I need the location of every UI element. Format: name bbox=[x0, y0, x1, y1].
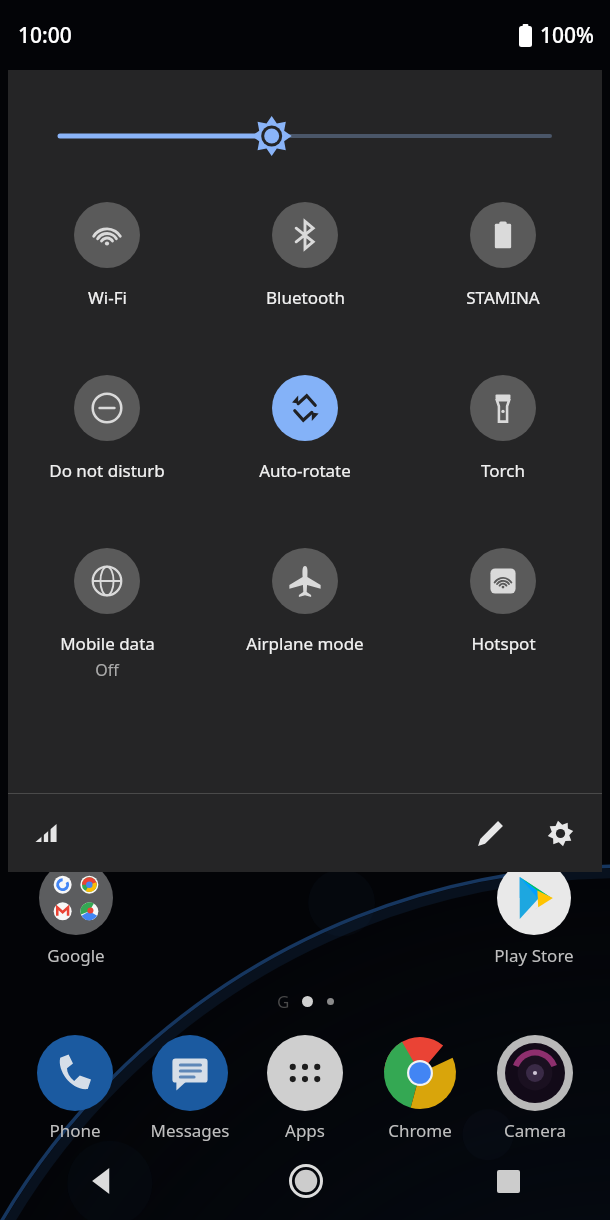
staticText: G bbox=[277, 990, 290, 1013]
button[interactable]: STAMINA bbox=[404, 202, 602, 309]
button[interactable]: Back bbox=[0, 1142, 204, 1220]
button[interactable]: Wi-Fi bbox=[8, 202, 206, 309]
staticText: 10:00 bbox=[18, 21, 72, 50]
button[interactable] bbox=[60, 116, 550, 156]
staticText: Messages bbox=[150, 1119, 230, 1142]
button[interactable]: Camera bbox=[483, 1035, 587, 1142]
staticText: Google bbox=[47, 944, 105, 967]
button[interactable]: Torch bbox=[404, 375, 602, 482]
button[interactable]: Settings bbox=[534, 807, 586, 859]
staticText: Off bbox=[95, 659, 119, 681]
staticText: Mobile data bbox=[60, 632, 155, 655]
button[interactable]: Chrome bbox=[368, 1035, 472, 1142]
staticText: STAMINA bbox=[466, 286, 540, 309]
staticText: Auto-rotate bbox=[259, 459, 351, 482]
staticText: Play Store bbox=[494, 944, 574, 967]
button[interactable]: Signal strength bbox=[22, 809, 70, 857]
button[interactable]: Do not disturb bbox=[8, 375, 206, 482]
staticText: Do not disturb bbox=[49, 459, 165, 482]
button[interactable]: Recents bbox=[407, 1142, 610, 1220]
button[interactable]: Airplane mode bbox=[206, 548, 404, 655]
button[interactable]: Mobile data bbox=[8, 548, 206, 681]
button[interactable]: Edit tiles bbox=[464, 807, 516, 859]
staticText: Airplane mode bbox=[246, 632, 364, 655]
button[interactable]: Google bbox=[24, 860, 128, 967]
staticText: Apps bbox=[285, 1119, 325, 1142]
button[interactable]: Play Store bbox=[482, 860, 586, 967]
button[interactable]: Bluetooth bbox=[206, 202, 404, 309]
staticText: Wi-Fi bbox=[88, 286, 127, 309]
staticText: Camera bbox=[504, 1119, 566, 1142]
staticText: 100% bbox=[540, 21, 594, 50]
button[interactable]: Apps bbox=[253, 1035, 357, 1142]
button[interactable]: Hotspot bbox=[404, 548, 602, 655]
button[interactable]: Home bbox=[204, 1142, 407, 1220]
button[interactable]: Auto-rotate bbox=[206, 375, 404, 482]
button[interactable]: Messages bbox=[138, 1035, 242, 1142]
button[interactable]: Phone bbox=[23, 1035, 127, 1142]
staticText: Phone bbox=[49, 1119, 101, 1142]
staticText: Torch bbox=[481, 459, 525, 482]
staticText: Chrome bbox=[388, 1119, 452, 1142]
staticText: Bluetooth bbox=[266, 286, 345, 309]
staticText: Hotspot bbox=[471, 632, 536, 655]
